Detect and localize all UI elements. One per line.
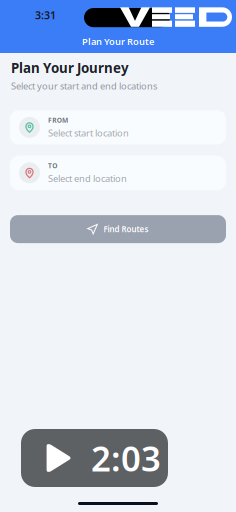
staticText: FROM xyxy=(48,116,68,125)
staticText: Plan Your Route xyxy=(82,35,154,48)
staticText: Find Routes xyxy=(103,224,148,234)
staticText: Select your start and end locations xyxy=(11,80,157,92)
staticText: Plan Your Journey xyxy=(11,59,129,77)
staticText: Select start location xyxy=(48,127,129,139)
button[interactable]: Find Routes xyxy=(10,215,226,243)
staticText: 2:03 xyxy=(91,435,161,481)
button[interactable]: FROM xyxy=(10,110,226,145)
staticText: 3:31 xyxy=(35,8,56,22)
staticText: TO xyxy=(48,161,57,170)
button[interactable]: TO xyxy=(10,156,226,190)
staticText: Select end location xyxy=(48,172,127,184)
